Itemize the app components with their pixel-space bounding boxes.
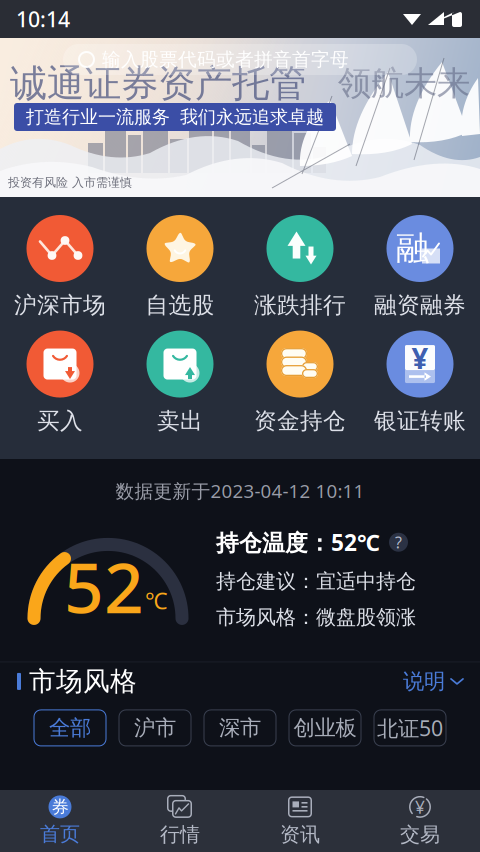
staticText: 北证50 — [377, 713, 443, 742]
staticText: 领航未来 — [338, 62, 470, 104]
button[interactable]: 自选股 — [120, 215, 240, 320]
staticText: 诚通证券资产托管 — [10, 60, 306, 107]
staticText: 买入 — [37, 407, 83, 435]
button[interactable]: 资金持仓 — [240, 331, 360, 435]
button[interactable]: ¥ — [360, 331, 480, 435]
button[interactable]: 全部 — [33, 709, 106, 746]
staticText: 市场风格 — [29, 665, 137, 698]
staticText: 深市 — [219, 714, 261, 741]
button[interactable]: 沪深市场 — [0, 215, 120, 320]
button[interactable]: 券 — [0, 795, 120, 847]
staticText: 52 — [64, 539, 144, 634]
staticText: 持仓温度：52℃ — [216, 527, 380, 558]
staticText: 交易 — [400, 822, 440, 847]
button[interactable]: 创业板 — [288, 709, 361, 746]
staticText: ¥ — [411, 338, 428, 378]
staticText: 打造行业一流服务 我们永远追求卓越 — [26, 106, 324, 128]
staticText: 投资有风险 入市需谨慎 — [8, 175, 132, 190]
button[interactable]: 资讯 — [240, 795, 360, 847]
staticText: ℃ — [145, 585, 168, 616]
staticText: 融 — [396, 227, 429, 269]
button[interactable]: 涨跌排行 — [240, 215, 360, 320]
staticText: 输入股票代码或者拼音首字母 — [102, 48, 349, 71]
staticText: 银证转账 — [374, 407, 466, 435]
button[interactable]: 说明 — [403, 668, 464, 695]
staticText: 沪市 — [134, 714, 176, 741]
button[interactable]: 说明 — [389, 533, 408, 552]
staticText: 创业板 — [293, 714, 356, 741]
button[interactable]: 买入 — [0, 331, 120, 435]
button[interactable]: 深市 — [203, 709, 276, 746]
staticText: 全部 — [49, 714, 91, 741]
staticText: 行情 — [160, 822, 200, 847]
button[interactable]: 卖出 — [120, 331, 240, 435]
button[interactable]: ¥ — [360, 795, 480, 847]
staticText: 自选股 — [145, 291, 214, 320]
staticText: 市场风格：微盘股领涨 — [216, 605, 416, 630]
button[interactable]: 行情 — [120, 795, 240, 847]
staticText: 沪深市场 — [14, 291, 106, 320]
staticText: 持仓建议：宜适中持仓 — [216, 569, 416, 594]
staticText: 说明 — [403, 668, 445, 695]
staticText: 资讯 — [280, 822, 320, 847]
staticText: 卖出 — [157, 407, 203, 435]
staticText: 首页 — [40, 821, 80, 847]
button[interactable]: 北证50 — [373, 709, 446, 746]
staticText: 涨跌排行 — [254, 291, 346, 320]
staticText: 资金持仓 — [254, 407, 346, 435]
staticText: ¥ — [415, 795, 425, 819]
button[interactable]: 输入股票代码或者拼音首字母 — [63, 44, 417, 75]
staticText: 10:14 — [16, 4, 70, 34]
staticText: 券 — [51, 796, 68, 818]
staticText: ? — [395, 531, 402, 553]
button[interactable]: 融 — [360, 215, 480, 320]
button[interactable]: 沪市 — [118, 709, 191, 746]
staticText: 数据更新于2023-04-12 10:11 — [115, 478, 364, 503]
staticText: 融资融券 — [374, 291, 466, 320]
